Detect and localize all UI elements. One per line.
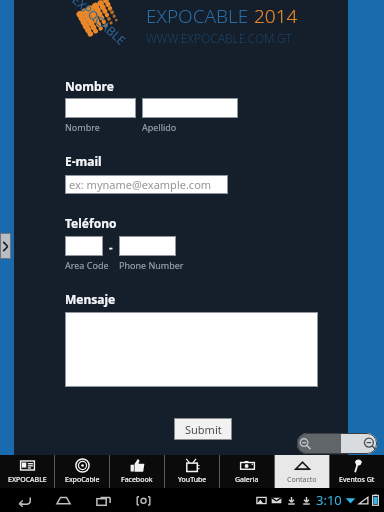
- staticText: 3:10: [316, 491, 342, 509]
- button[interactable]: Submit: [174, 418, 232, 440]
- staticText: Teléfono: [65, 215, 117, 231]
- staticText: EXPOCABLE: [8, 475, 47, 485]
- staticText: Eventos Gt: [339, 475, 375, 485]
- button[interactable]: Screenshot: [132, 489, 154, 511]
- button[interactable]: EXPOCABLE: [0, 455, 54, 488]
- staticText: Nombre: [65, 121, 100, 133]
- button[interactable]: [65, 312, 318, 387]
- button[interactable]: ExpoCable: [55, 455, 109, 488]
- staticText: ExpoCable: [65, 475, 100, 485]
- staticText: YouTube: [178, 475, 207, 485]
- staticText: Nombre: [65, 78, 114, 94]
- staticText: Contacto: [287, 475, 317, 485]
- staticText: Submit: [185, 422, 222, 437]
- button[interactable]: [142, 98, 238, 118]
- staticText: Area Code: [65, 259, 109, 271]
- button[interactable]: Home: [52, 489, 74, 511]
- button[interactable]: Back: [12, 489, 34, 511]
- staticText: E-mail: [65, 153, 102, 169]
- button[interactable]: Recents: [92, 489, 114, 511]
- button[interactable]: Zoom controls: [297, 433, 377, 454]
- staticText: Apellido: [142, 121, 177, 133]
- button[interactable]: Facebook: [110, 455, 164, 488]
- button[interactable]: Eventos Gt: [330, 455, 384, 488]
- staticText: WWW.EXPOCABLE.COM.GT: [146, 30, 292, 46]
- button[interactable]: Galeria: [220, 455, 274, 488]
- button[interactable]: Open panel: [0, 233, 11, 259]
- button[interactable]: Contacto: [275, 455, 329, 488]
- staticText: Mensaje: [65, 291, 116, 307]
- staticText: Phone Number: [119, 259, 184, 271]
- staticText: -: [109, 239, 113, 254]
- button[interactable]: [65, 236, 103, 256]
- staticText: EXPOCABLE: [69, 0, 130, 48]
- staticText: ex: myname@example.com: [69, 177, 212, 192]
- button[interactable]: ex: myname@example.com: [65, 175, 228, 194]
- staticText: 2014: [254, 3, 298, 29]
- staticText: EXPOCABLE: [146, 3, 254, 29]
- staticText: Galeria: [235, 475, 259, 485]
- button[interactable]: YouTube: [165, 455, 219, 488]
- staticText: Facebook: [121, 475, 153, 485]
- button[interactable]: [65, 98, 136, 118]
- button[interactable]: [119, 236, 176, 256]
